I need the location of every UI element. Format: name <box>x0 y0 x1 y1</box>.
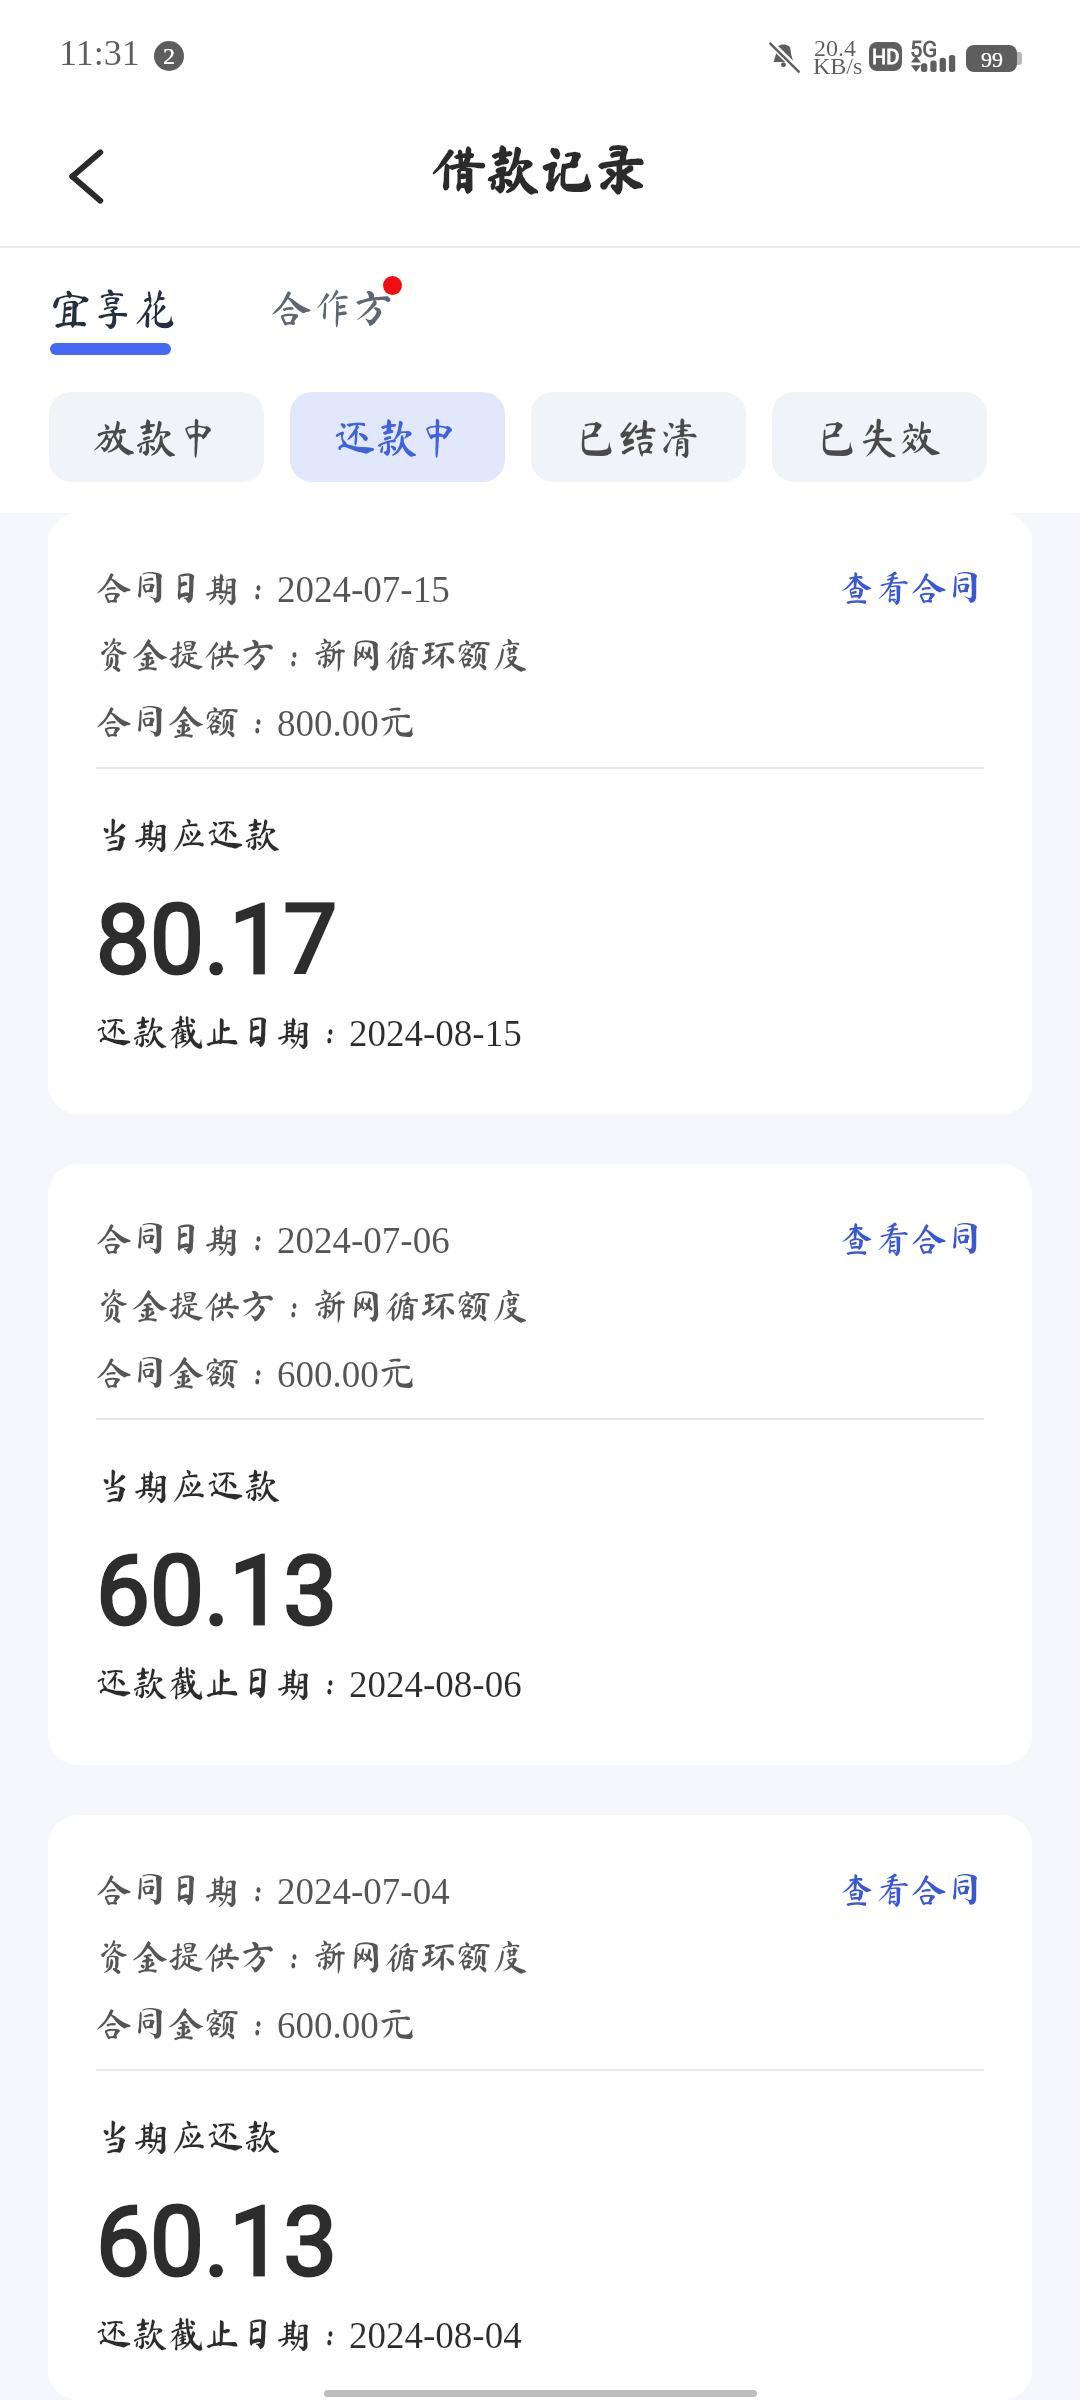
staticText: 还款中 <box>334 416 461 458</box>
staticText: 宜享花 <box>50 287 177 329</box>
staticText: 11:31 <box>59 33 140 73</box>
staticText: 60.13 <box>96 1535 338 1648</box>
staticText: 合同日期： <box>96 569 277 605</box>
staticText: 元 <box>379 2005 416 2041</box>
staticText: 查看合同 <box>839 1220 984 1256</box>
staticText: 当期应还款 <box>96 2117 281 2154</box>
staticText: 合同日期： <box>96 1220 277 1256</box>
staticText: 2024-08-15 <box>349 1013 522 1054</box>
staticText: 2 <box>163 43 175 70</box>
staticText: KB/s <box>813 53 863 80</box>
staticText: 放款中 <box>93 416 220 458</box>
staticText: 2024-07-06 <box>277 1220 450 1261</box>
staticText: 已结清 <box>575 416 702 458</box>
button[interactable]: 合作方 <box>271 287 402 328</box>
staticText: 2024-08-06 <box>349 1664 522 1705</box>
staticText: 合作方 <box>271 287 394 328</box>
staticText: HD <box>872 45 900 68</box>
staticText: 800.00 <box>277 703 379 744</box>
staticText: 元 <box>379 703 416 739</box>
staticText: 已失效 <box>816 416 943 458</box>
staticText: 借款记录 <box>432 141 648 195</box>
staticText: 还款截止日期： <box>96 1013 349 1049</box>
staticText: 合同日期： <box>96 1871 277 1907</box>
button[interactable]: 已失效 <box>772 392 987 482</box>
staticText: 还款截止日期： <box>96 2315 349 2351</box>
button[interactable]: 合同日期： <box>48 513 1032 1114</box>
staticText: 资金提供方：新网循环额度 <box>96 1287 529 1323</box>
staticText: 600.00 <box>277 1354 379 1395</box>
staticText: 还款截止日期： <box>96 1664 349 1700</box>
button[interactable]: 已结清 <box>531 392 746 482</box>
button[interactable]: 合同日期： <box>48 1815 1032 2400</box>
staticText: 2024-07-15 <box>277 569 450 610</box>
staticText: 2024-08-04 <box>349 2315 522 2356</box>
staticText: 合同金额： <box>96 1354 277 1390</box>
button[interactable]: 合同日期： <box>48 1164 1032 1765</box>
staticText: 当期应还款 <box>96 1466 281 1503</box>
button[interactable]: 查看合同 <box>839 569 984 605</box>
button[interactable]: 宜享花 <box>50 287 177 355</box>
staticText: 合同金额： <box>96 2005 277 2041</box>
staticText: 元 <box>379 1354 416 1390</box>
button[interactable]: Back <box>40 134 130 224</box>
staticText: 600.00 <box>277 2005 379 2046</box>
staticText: 99 <box>981 47 1003 71</box>
staticText: 20.4 <box>814 35 856 62</box>
staticText: 资金提供方：新网循环额度 <box>96 1938 529 1974</box>
staticText: 5G <box>910 37 938 63</box>
button[interactable]: 查看合同 <box>839 1871 984 1907</box>
staticText: 60.13 <box>96 2186 338 2299</box>
staticText: 查看合同 <box>839 569 984 605</box>
button[interactable]: 放款中 <box>49 392 264 482</box>
staticText: 查看合同 <box>839 1871 984 1907</box>
staticText: 合同金额： <box>96 703 277 739</box>
button[interactable]: 查看合同 <box>839 1220 984 1256</box>
staticText: 资金提供方：新网循环额度 <box>96 636 529 672</box>
staticText: 2024-07-04 <box>277 1871 450 1912</box>
staticText: 80.17 <box>96 884 338 997</box>
button[interactable]: 还款中 <box>290 392 505 482</box>
staticText: 当期应还款 <box>96 815 281 852</box>
